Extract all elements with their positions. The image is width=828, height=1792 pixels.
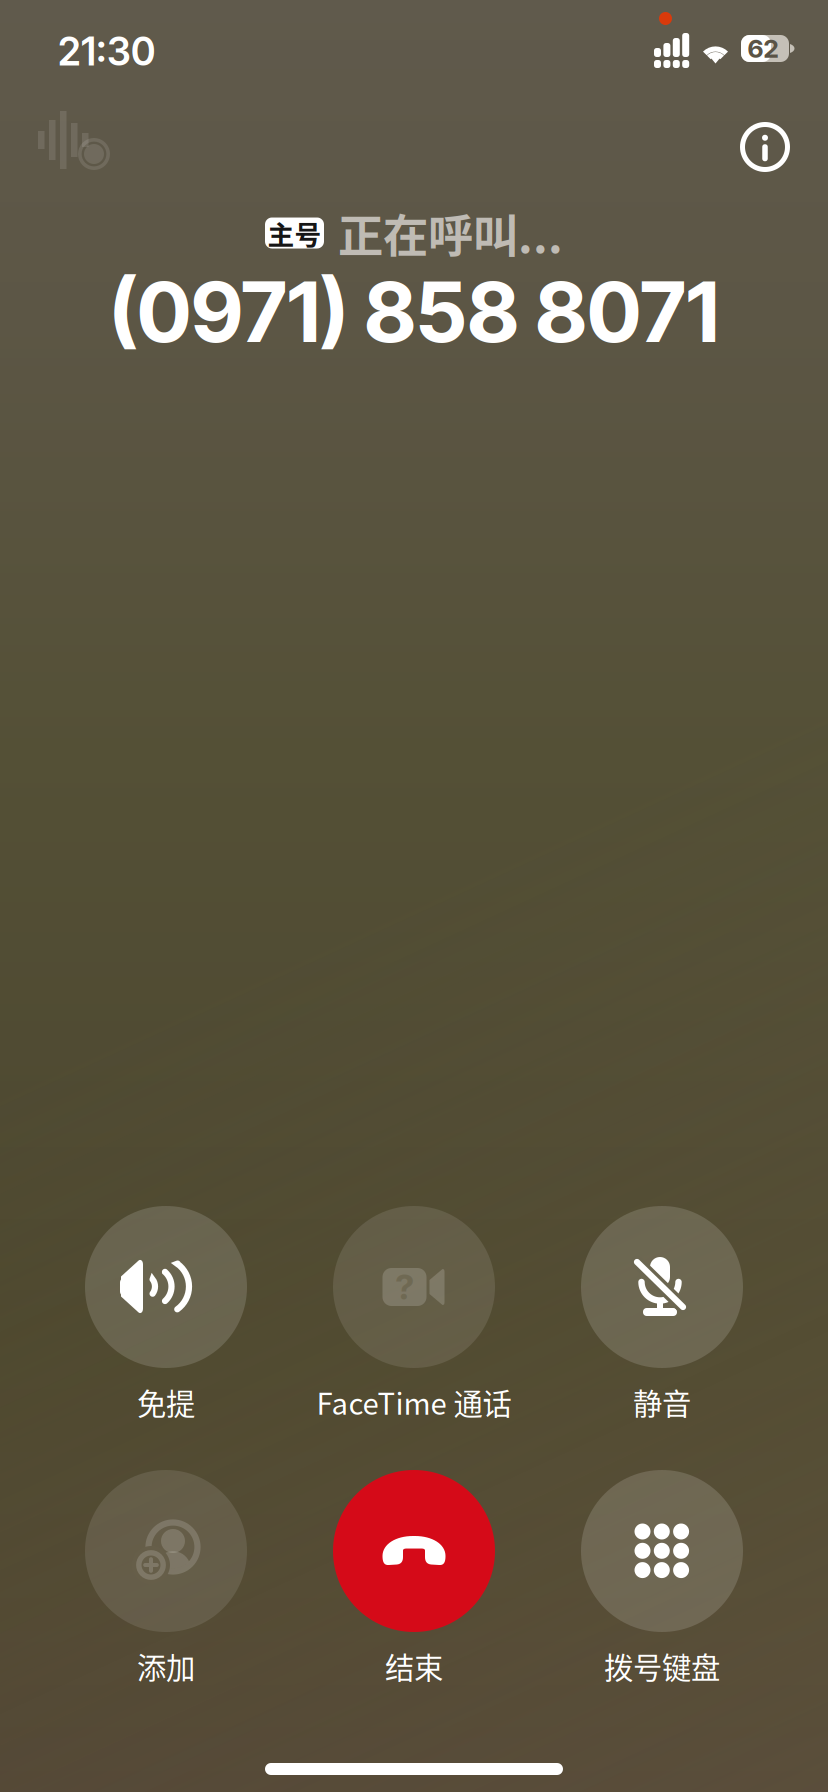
- staticText: FaceTime 通话: [316, 1381, 511, 1423]
- button[interactable]: 拨号键盘: [538, 1470, 786, 1681]
- staticText: 正在呼叫...: [338, 200, 563, 266]
- staticText: 结束: [385, 1645, 443, 1687]
- button[interactable]: ?: [290, 1206, 538, 1417]
- staticText: 静音: [633, 1381, 691, 1423]
- staticText: 21:30: [58, 28, 155, 75]
- staticText: ?: [395, 1266, 413, 1308]
- button[interactable]: 结束: [290, 1470, 538, 1681]
- staticText: 添加: [137, 1645, 195, 1687]
- staticText: (0971) 858 8071: [109, 262, 719, 362]
- staticText: 拨号键盘: [604, 1645, 720, 1687]
- staticText: 免提: [137, 1381, 195, 1423]
- staticText: 主号: [267, 214, 321, 252]
- button[interactable]: 添加: [42, 1470, 290, 1681]
- button[interactable]: 免提: [42, 1206, 290, 1417]
- button[interactable]: Call info: [734, 116, 796, 178]
- staticText: 62: [747, 33, 778, 64]
- button[interactable]: 静音: [538, 1206, 786, 1417]
